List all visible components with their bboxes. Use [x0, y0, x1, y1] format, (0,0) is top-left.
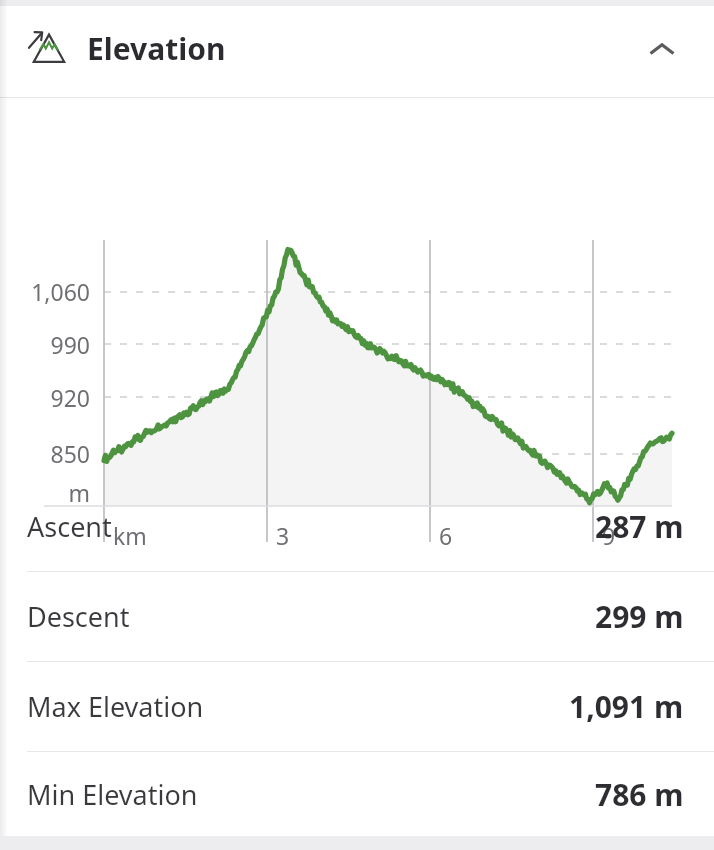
button[interactable]: Max Elevation — [0, 662, 714, 751]
staticText: 990 — [0, 329, 90, 360]
button[interactable]: Min Elevation — [0, 752, 714, 836]
staticText: 786 m — [595, 774, 684, 815]
staticText: 287 m — [595, 506, 684, 547]
staticText: 9 — [602, 520, 616, 551]
staticText: Min Elevation — [27, 776, 198, 813]
staticText: Max Elevation — [27, 688, 204, 725]
button[interactable]: Ascent — [0, 481, 714, 571]
staticText: 920 — [0, 382, 90, 413]
staticText: 1,091 m — [569, 686, 684, 727]
staticText: m — [0, 477, 90, 508]
staticText: 850 — [0, 438, 90, 469]
staticText: Descent — [27, 598, 130, 635]
staticText: 1,060 — [0, 276, 90, 307]
staticText: 3 — [276, 520, 290, 551]
button[interactable]: Descent — [0, 572, 714, 661]
staticText: 6 — [439, 520, 453, 551]
button[interactable]: Elevation — [0, 0, 714, 97]
staticText: 299 m — [595, 596, 684, 637]
staticText: Elevation — [87, 28, 226, 69]
button[interactable]: Collapse — [640, 27, 684, 71]
staticText: Ascent — [27, 508, 112, 545]
staticText: km — [113, 520, 147, 551]
